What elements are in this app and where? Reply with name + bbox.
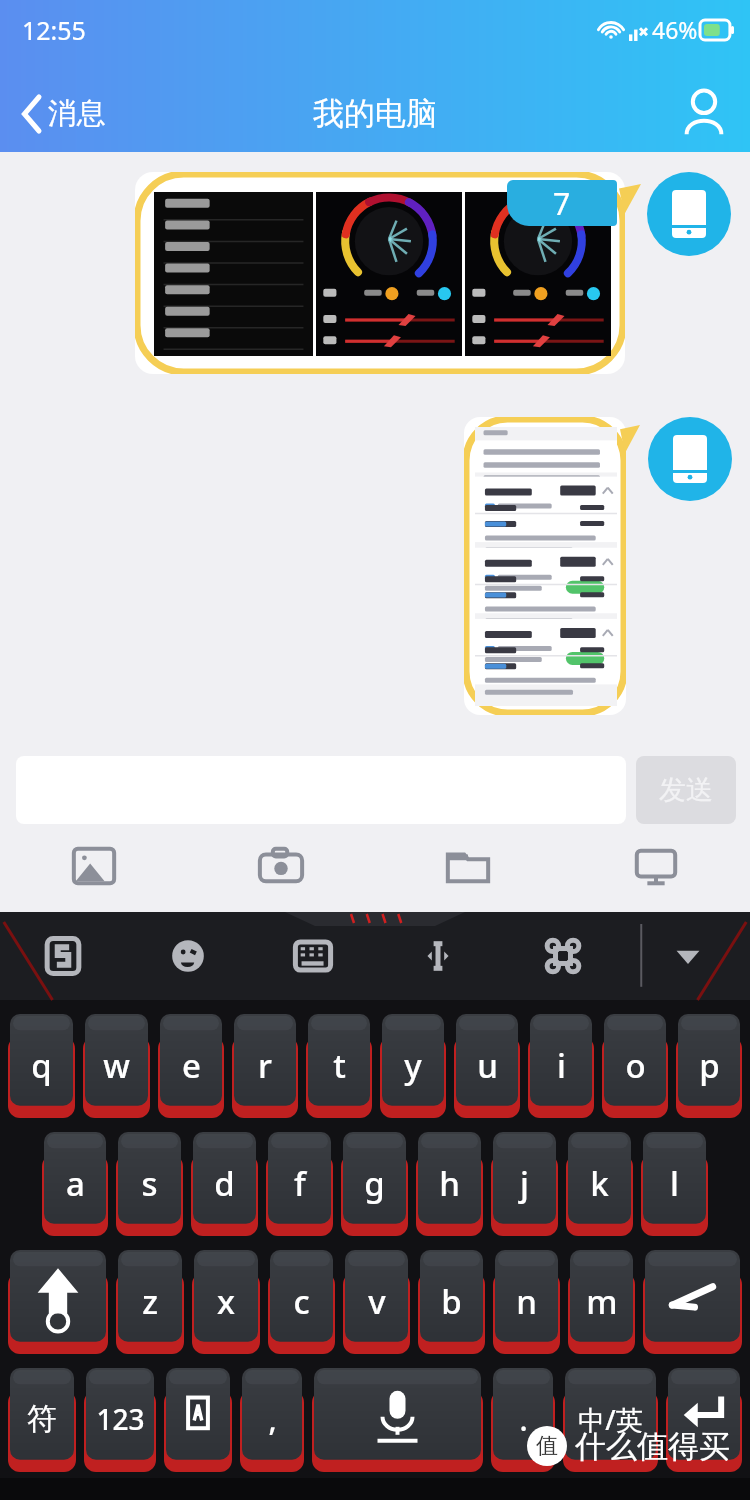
button[interactable]: Hide keyboard: [625, 912, 750, 1000]
button[interactable]: v: [342, 1250, 411, 1352]
staticText: v: [368, 1279, 386, 1324]
staticText: f: [294, 1161, 306, 1206]
button[interactable]: Camera: [187, 824, 374, 908]
button[interactable]: g: [340, 1132, 409, 1234]
staticText: 46%: [652, 14, 698, 45]
button[interactable]: 符: [7, 1368, 77, 1470]
button[interactable]: e: [157, 1014, 225, 1116]
button[interactable]: m: [567, 1250, 636, 1352]
button[interactable]: l: [640, 1132, 709, 1234]
button[interactable]: [135, 172, 625, 374]
button[interactable]: p: [675, 1014, 743, 1116]
button[interactable]: Screen: [562, 824, 750, 908]
button[interactable]: a: [41, 1132, 109, 1234]
staticText: q: [31, 1043, 52, 1088]
button[interactable]: q: [7, 1014, 76, 1116]
staticText: .: [519, 1399, 528, 1440]
staticText: k: [590, 1161, 609, 1206]
button[interactable]: z: [115, 1250, 185, 1352]
button[interactable]: Cursor: [375, 912, 500, 1000]
staticText: n: [516, 1279, 537, 1324]
button[interactable]: Enter: [665, 1368, 743, 1470]
button[interactable]: Device avatar: [647, 172, 731, 256]
button[interactable]: t: [305, 1014, 373, 1116]
staticText: 12:55: [22, 13, 86, 47]
button[interactable]: r: [231, 1014, 299, 1116]
staticText: 7: [553, 183, 571, 224]
button[interactable]: .: [490, 1368, 556, 1470]
button[interactable]: Device avatar: [648, 417, 732, 501]
button[interactable]: h: [415, 1132, 484, 1234]
button[interactable]: Sogou: [0, 912, 125, 1000]
button[interactable]: i: [527, 1014, 595, 1116]
button[interactable]: u: [453, 1014, 521, 1116]
button[interactable]: ,: [239, 1368, 305, 1470]
button[interactable]: [464, 417, 626, 715]
staticText: m: [586, 1279, 618, 1324]
staticText: j: [520, 1161, 529, 1206]
button[interactable]: Backspace: [642, 1250, 743, 1352]
button[interactable]: n: [492, 1250, 561, 1352]
button[interactable]: k: [565, 1132, 634, 1234]
button[interactable]: Files: [374, 824, 562, 908]
staticText: u: [477, 1043, 498, 1088]
button[interactable]: b: [417, 1250, 486, 1352]
button[interactable]: d: [190, 1132, 259, 1234]
staticText: a: [66, 1161, 85, 1206]
staticText: d: [214, 1161, 235, 1206]
button[interactable]: c: [267, 1250, 336, 1352]
staticText: z: [142, 1279, 158, 1324]
staticText: s: [141, 1161, 158, 1206]
staticText: g: [364, 1161, 385, 1206]
staticText: 我的电脑: [313, 94, 437, 133]
staticText: i: [557, 1043, 566, 1088]
staticText: c: [293, 1279, 310, 1324]
staticText: b: [441, 1279, 462, 1324]
button[interactable]: o: [601, 1014, 669, 1116]
staticText: 中/英: [578, 1401, 643, 1438]
button[interactable]: Profile: [676, 85, 732, 141]
button[interactable]: Space: [311, 1368, 484, 1470]
button[interactable]: 123: [83, 1368, 157, 1470]
button[interactable]: Shift: [7, 1250, 109, 1352]
staticText: w: [103, 1043, 130, 1088]
staticText: r: [258, 1043, 272, 1088]
staticText: h: [439, 1161, 460, 1206]
button[interactable]: Emoji: [125, 912, 250, 1000]
button[interactable]: Shortcuts: [500, 912, 625, 1000]
staticText: ,: [268, 1399, 277, 1440]
button[interactable]: 中/英: [562, 1368, 659, 1470]
staticText: o: [625, 1043, 646, 1088]
button[interactable]: x: [191, 1250, 261, 1352]
staticText: 什么值得买: [575, 1427, 730, 1466]
button[interactable]: 发送: [636, 756, 736, 824]
staticText: 123: [96, 1400, 145, 1438]
button[interactable]: y: [379, 1014, 447, 1116]
staticText: x: [217, 1279, 235, 1324]
staticText: l: [670, 1161, 679, 1206]
button[interactable]: f: [265, 1132, 334, 1234]
staticText: 符: [27, 1400, 57, 1438]
button[interactable]: w: [82, 1014, 151, 1116]
button[interactable]: Input method: [163, 1368, 233, 1470]
staticText: y: [404, 1043, 422, 1088]
staticText: e: [182, 1043, 201, 1088]
button[interactable]: j: [490, 1132, 559, 1234]
button[interactable]: s: [115, 1132, 184, 1234]
button[interactable]: Photos: [0, 824, 187, 908]
button[interactable]: 消息: [16, 87, 112, 140]
staticText: p: [699, 1043, 720, 1088]
staticText: 发送: [659, 773, 713, 807]
staticText: t: [333, 1043, 346, 1088]
button[interactable]: Keyboard layout: [250, 912, 375, 1000]
staticText: 消息: [48, 95, 106, 132]
staticText: 值: [536, 1432, 558, 1460]
